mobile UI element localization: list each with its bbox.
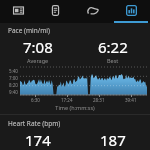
staticText: 6:30 — [31, 97, 40, 103]
staticText: 39:41 — [125, 97, 137, 103]
button[interactable]: Laps — [0, 0, 37, 20]
staticText: 7:00 — [9, 75, 18, 81]
staticText: 5:40 — [9, 68, 18, 74]
button[interactable]: 7:08 — [0, 37, 75, 64]
staticText: 187 — [100, 130, 126, 150]
button[interactable]: Charts — [112, 0, 150, 20]
button[interactable]: 187 — [75, 130, 150, 150]
staticText: Best — [107, 57, 119, 64]
staticText: 28:31 — [93, 97, 105, 103]
staticText: 6:22 — [98, 37, 128, 57]
staticText: Heart Rate (bpm) — [8, 119, 61, 128]
button[interactable]: Route — [74, 0, 112, 20]
staticText: 8:20 — [9, 82, 18, 88]
staticText: Time (h:mm:ss) — [0, 104, 150, 111]
staticText: 17:24 — [61, 97, 73, 103]
staticText: Pace (min/mi) — [8, 26, 50, 35]
staticText: Average — [27, 57, 49, 64]
staticText: 7:08 — [23, 37, 53, 57]
staticText: 174 — [25, 130, 51, 150]
button[interactable]: Details — [37, 0, 74, 20]
staticText: 9:40 — [9, 89, 18, 95]
button[interactable]: 174 — [0, 130, 75, 150]
button[interactable]: 6:22 — [75, 37, 150, 64]
